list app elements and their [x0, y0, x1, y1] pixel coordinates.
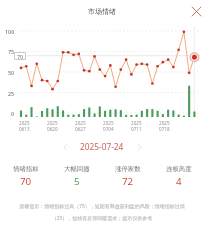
button[interactable]: Close [188, 3, 204, 19]
staticText: 2025 [103, 120, 114, 126]
staticText: 70 [20, 175, 32, 188]
staticText: 25 [8, 90, 15, 97]
staticText: 市场情绪 [0, 7, 204, 16]
staticText: 75 [8, 48, 15, 55]
staticText: 2025 [19, 120, 30, 126]
staticText: 2025 [159, 120, 170, 126]
staticText: 0 [11, 110, 15, 117]
button[interactable]: 情绪指标 [0, 165, 51, 188]
staticText: 70 [17, 53, 24, 60]
staticText: 大幅回撤 [64, 165, 90, 173]
staticText: 0718 [159, 126, 170, 132]
staticText: 0620 [47, 126, 58, 132]
button[interactable]: 大幅回撤 [51, 165, 102, 188]
staticText: 0613 [19, 126, 30, 132]
staticText: 连板高度 [166, 165, 192, 173]
button[interactable]: 涨停家数 [102, 165, 153, 188]
staticText: 2025 [47, 120, 58, 126]
staticText: 0627 [75, 126, 86, 132]
staticText: 2025 [75, 120, 86, 126]
button[interactable]: 2025-07-24 [80, 141, 124, 152]
button[interactable]: 连板高度 [153, 165, 204, 188]
staticText: 72 [122, 175, 134, 188]
staticText: 5 [74, 175, 80, 188]
staticText: 4 [176, 175, 182, 188]
staticText: 情绪指标 [13, 165, 39, 173]
staticText: 温馨提示：情绪指标过高（75），短期有释放获利盘的风险；情绪指标过低（25），短… [11, 203, 193, 221]
staticText: 0711 [131, 126, 142, 132]
staticText: 涨停家数 [115, 165, 141, 173]
button[interactable]: Previous day [58, 140, 72, 154]
staticText: 2025 [131, 120, 142, 126]
staticText: 0704 [103, 126, 114, 132]
staticText: 50 [8, 69, 15, 76]
staticText: 100 [5, 28, 15, 35]
button[interactable]: Next day [132, 140, 146, 154]
